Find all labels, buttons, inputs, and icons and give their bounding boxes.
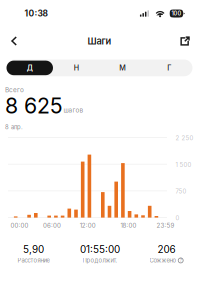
staticText: 23:59 bbox=[157, 222, 175, 229]
staticText: Н bbox=[74, 63, 79, 72]
staticText: Г bbox=[167, 63, 171, 72]
staticText: 0 bbox=[176, 214, 180, 222]
staticText: 01:55:00 bbox=[80, 243, 120, 255]
staticText: 1 500 bbox=[176, 161, 192, 168]
button[interactable]: 5,90 bbox=[0, 245, 67, 264]
button[interactable]: 01:55:00 bbox=[67, 245, 133, 264]
button[interactable]: Back bbox=[3, 31, 25, 51]
button[interactable]: 206 bbox=[133, 245, 200, 264]
staticText: 12:00 bbox=[80, 222, 96, 229]
staticText: 18:00 bbox=[121, 222, 137, 229]
staticText: 2 250 bbox=[176, 134, 194, 142]
staticText: 00:00 bbox=[10, 222, 28, 229]
staticText: 100 bbox=[171, 10, 181, 17]
staticText: 8 625 bbox=[5, 93, 63, 119]
staticText: ? bbox=[180, 258, 182, 263]
staticText: 206 bbox=[158, 243, 176, 255]
button[interactable]: Д bbox=[6, 61, 53, 75]
staticText: Расстояние bbox=[17, 257, 49, 264]
staticText: 10:38 bbox=[24, 8, 47, 19]
staticText: Всего bbox=[5, 86, 24, 94]
staticText: шагов bbox=[63, 106, 83, 114]
staticText: Д bbox=[27, 63, 33, 72]
staticText: 750 bbox=[176, 188, 187, 195]
button[interactable]: М bbox=[99, 61, 146, 75]
button[interactable]: Н bbox=[53, 61, 99, 75]
button[interactable]: Г bbox=[146, 61, 192, 75]
button[interactable]: Share bbox=[174, 31, 196, 51]
staticText: Продолжит. bbox=[82, 257, 117, 264]
staticText: 8 апр. bbox=[5, 124, 23, 131]
staticText: 06:00 bbox=[43, 222, 61, 229]
staticText: Сожжено bbox=[150, 257, 177, 264]
staticText: 5,90 bbox=[23, 243, 44, 255]
staticText: М bbox=[119, 63, 126, 72]
staticText: Шаги bbox=[87, 35, 111, 47]
